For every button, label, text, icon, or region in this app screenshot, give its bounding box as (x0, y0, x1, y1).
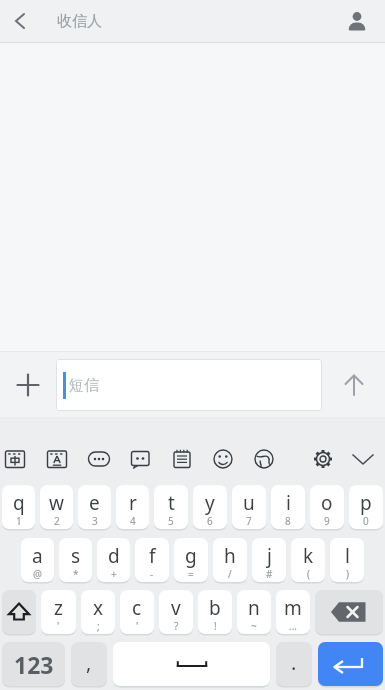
staticText: 1 (16, 514, 22, 528)
staticText: x (93, 595, 104, 621)
staticText: 5 (168, 514, 174, 528)
staticText: * (73, 567, 79, 581)
staticText: ' (57, 619, 60, 633)
staticText: @ (33, 567, 42, 581)
staticText: n (248, 595, 260, 621)
staticText: s (71, 543, 81, 569)
button[interactable]: , (71, 642, 107, 686)
staticText: ( (307, 567, 310, 581)
button[interactable]: x (81, 590, 115, 634)
button[interactable]: c (120, 590, 154, 634)
button[interactable]: r (116, 485, 149, 529)
button[interactable] (2, 590, 36, 634)
staticText: h (224, 543, 236, 569)
button[interactable]: p (349, 485, 383, 529)
staticText: ! (214, 619, 217, 633)
staticText: g (185, 543, 197, 569)
button[interactable]: e (78, 485, 111, 529)
button[interactable]: w (40, 485, 73, 529)
button[interactable] (337, 0, 381, 42)
button[interactable]: f (135, 538, 169, 582)
staticText: ) (346, 567, 349, 581)
staticText: 123 (14, 649, 54, 680)
staticText: 4 (130, 514, 136, 528)
button[interactable] (0, 352, 56, 417)
staticText: . (291, 649, 297, 676)
staticText: - (150, 567, 154, 581)
staticText: ... (289, 619, 298, 633)
staticText: ' (136, 619, 139, 633)
staticText: 9 (324, 514, 330, 528)
button[interactable]: q (2, 485, 35, 529)
button[interactable]: . (276, 642, 312, 686)
button[interactable] (113, 642, 270, 686)
staticText: c (132, 595, 142, 621)
staticText: e (89, 490, 100, 516)
staticText: 7 (246, 514, 252, 528)
staticText: ? (174, 619, 179, 633)
button[interactable]: v (159, 590, 193, 634)
button[interactable]: b (198, 590, 232, 634)
staticText: j (267, 543, 272, 569)
staticText: 0 (363, 514, 369, 528)
button[interactable]: d (97, 538, 130, 582)
button[interactable] (315, 590, 383, 634)
button[interactable]: a (21, 538, 54, 582)
staticText: z (54, 595, 63, 621)
button[interactable]: k (291, 538, 325, 582)
staticText: , (86, 649, 92, 676)
button[interactable]: n (237, 590, 271, 634)
button[interactable]: h (213, 538, 247, 582)
button[interactable]: l (330, 538, 364, 582)
staticText: o (321, 490, 333, 516)
button[interactable]: y (193, 485, 227, 529)
button[interactable] (244, 439, 284, 479)
button[interactable]: s (59, 538, 92, 582)
button[interactable] (322, 352, 385, 417)
button[interactable] (203, 439, 243, 479)
button[interactable]: g (174, 538, 208, 582)
staticText: m (284, 595, 302, 621)
button[interactable]: m (276, 590, 310, 634)
staticText: d (108, 543, 120, 569)
button[interactable] (162, 439, 202, 479)
button[interactable] (37, 439, 77, 479)
staticText: w (49, 490, 64, 516)
staticText: u (243, 490, 255, 516)
staticText: ; (97, 619, 100, 633)
staticText: = (188, 567, 194, 581)
button[interactable]: i (271, 485, 305, 529)
staticText: a (32, 543, 43, 569)
staticText: q (13, 490, 25, 516)
staticText: i (286, 490, 291, 516)
button[interactable]: z (41, 590, 76, 634)
staticText: p (360, 490, 372, 516)
button[interactable]: 123 (2, 642, 65, 686)
staticText: v (171, 595, 181, 621)
staticText: r (129, 490, 137, 516)
staticText: 3 (92, 514, 98, 528)
button[interactable] (0, 439, 35, 479)
button[interactable]: 短信 (56, 359, 322, 411)
button[interactable] (120, 439, 160, 479)
button[interactable] (79, 439, 119, 479)
staticText: k (303, 543, 314, 569)
staticText: f (149, 543, 156, 569)
staticText: 短信 (69, 376, 99, 395)
button[interactable] (0, 0, 40, 42)
button[interactable]: o (310, 485, 344, 529)
staticText: # (266, 567, 273, 581)
button[interactable] (318, 642, 383, 686)
button[interactable] (343, 439, 383, 479)
button[interactable] (303, 439, 343, 479)
button[interactable]: u (232, 485, 266, 529)
staticText: 6 (207, 514, 213, 528)
staticText: ~ (251, 619, 257, 633)
staticText: y (205, 490, 215, 516)
staticText: + (111, 567, 117, 581)
staticText: 收信人 (57, 12, 102, 31)
staticText: t (168, 490, 175, 516)
button[interactable]: t (154, 485, 188, 529)
staticText: l (345, 543, 350, 569)
button[interactable]: j (252, 538, 286, 582)
